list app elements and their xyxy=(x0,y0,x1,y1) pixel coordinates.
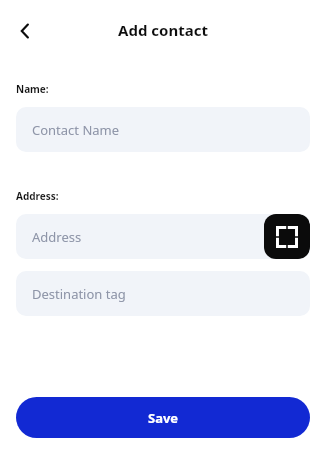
staticText: Name: xyxy=(16,82,49,96)
button[interactable]: Contact Name xyxy=(16,107,310,152)
button[interactable]: Back xyxy=(8,14,42,48)
button[interactable]: Destination tag xyxy=(16,271,310,316)
button[interactable]: Save xyxy=(16,397,310,438)
button[interactable]: Address xyxy=(16,214,310,259)
staticText: Contact Name xyxy=(32,121,120,139)
staticText: Add contact xyxy=(118,20,208,40)
staticText: Save xyxy=(148,409,179,427)
staticText: Address: xyxy=(16,189,59,203)
staticText: Destination tag xyxy=(32,285,126,303)
staticText: Address xyxy=(32,228,82,246)
button[interactable]: Scan QR code xyxy=(264,214,310,259)
